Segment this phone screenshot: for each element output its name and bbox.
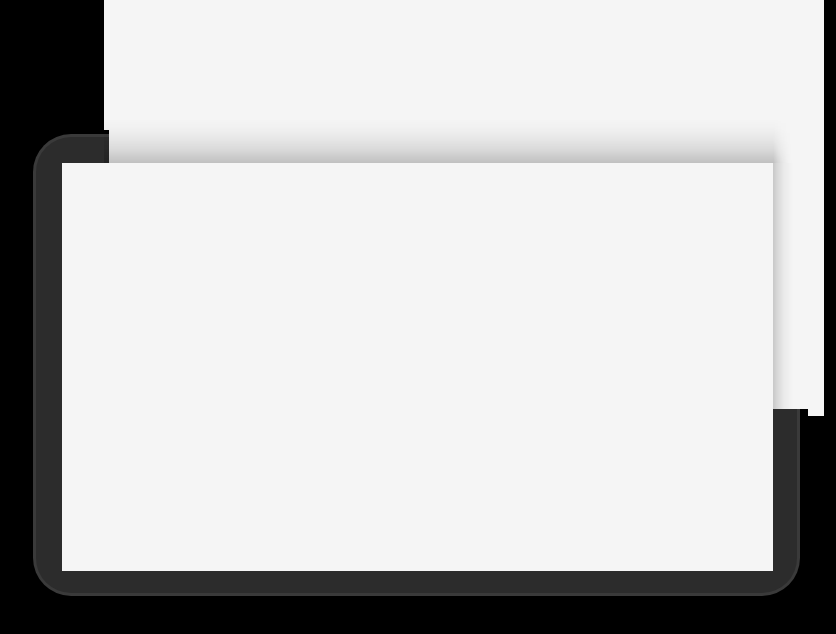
button[interactable]: Background surface xyxy=(104,0,824,416)
